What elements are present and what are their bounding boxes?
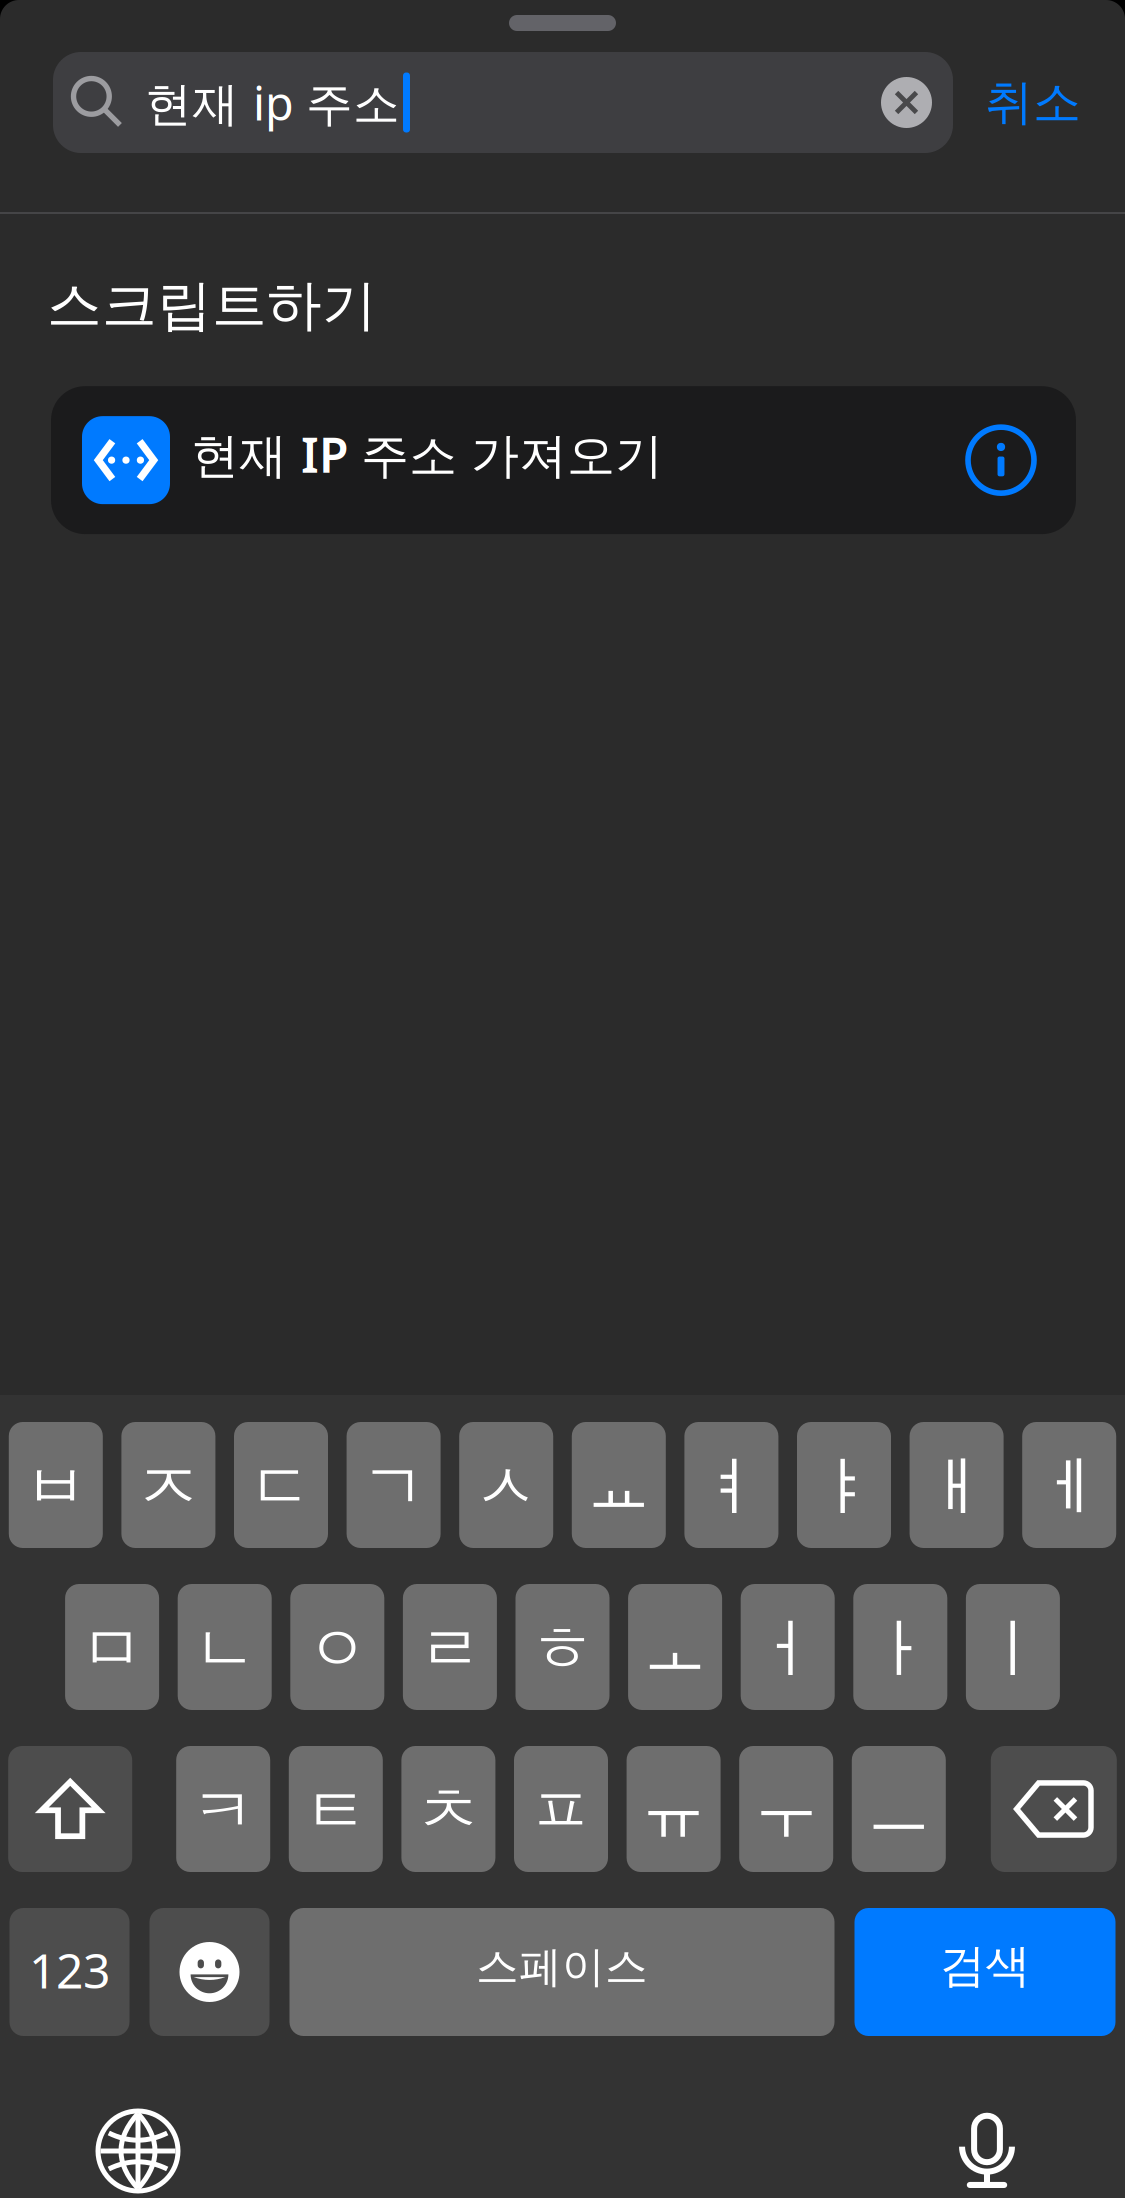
button[interactable]: Shift <box>8 1746 132 1872</box>
button[interactable]: ㄴ <box>178 1584 272 1710</box>
staticText: ㅁ <box>80 1610 144 1688</box>
staticText: ㅂ <box>24 1448 88 1526</box>
button[interactable]: ㄹ <box>403 1584 497 1710</box>
staticText: ㅣ <box>981 1610 1045 1688</box>
button[interactable]: ㅕ <box>684 1422 778 1548</box>
button[interactable]: ㅡ <box>852 1746 946 1872</box>
button[interactable]: ㅏ <box>853 1584 947 1710</box>
staticText: 현재 IP 주소 가져오기 <box>191 422 663 486</box>
button[interactable]: ㅐ <box>910 1422 1004 1548</box>
button[interactable]: ㅊ <box>401 1746 495 1872</box>
staticText: ㅊ <box>416 1772 480 1850</box>
staticText: 현재 ip 주소 <box>145 71 400 133</box>
staticText: ㅇ <box>305 1610 369 1688</box>
button[interactable]: Clear search text <box>881 77 932 128</box>
staticText: 검색 <box>940 1938 1030 1994</box>
button[interactable]: 현재 IP 주소 가져오기 <box>51 386 1076 534</box>
staticText: ㄹ <box>418 1610 482 1688</box>
button[interactable]: ㅑ <box>797 1422 891 1548</box>
button[interactable]: ㅌ <box>289 1746 383 1872</box>
staticText: ㅓ <box>756 1610 820 1688</box>
staticText: 취소 <box>985 73 1081 132</box>
button[interactable]: Dictation <box>944 2108 1030 2194</box>
staticText: 스크립트하기 <box>47 272 377 339</box>
staticText: ㅋ <box>191 1772 255 1850</box>
button[interactable]: Next keyboard <box>98 2111 178 2191</box>
staticText: ㅎ <box>530 1610 594 1688</box>
button[interactable]: 123 <box>9 1908 129 2036</box>
button[interactable]: ㅋ <box>176 1746 270 1872</box>
button[interactable]: Delete <box>991 1746 1117 1872</box>
button[interactable]: Emoji keyboard <box>149 1908 269 2036</box>
button[interactable]: ㅈ <box>121 1422 215 1548</box>
staticText: ㄴ <box>193 1610 257 1688</box>
staticText: ㅔ <box>1037 1448 1101 1526</box>
staticText: 스페이스 <box>476 1941 648 1993</box>
staticText: ㅍ <box>529 1772 593 1850</box>
button[interactable]: ㅔ <box>1022 1422 1116 1548</box>
staticText: ㅠ <box>642 1772 706 1850</box>
button[interactable]: ㄷ <box>234 1422 328 1548</box>
button[interactable]: 취소 <box>953 52 1113 153</box>
staticText: ㅈ <box>136 1448 200 1526</box>
button[interactable]: ㅓ <box>741 1584 835 1710</box>
button[interactable]: ㄱ <box>347 1422 441 1548</box>
staticText: ㅅ <box>474 1448 538 1526</box>
button[interactable]: ㅍ <box>514 1746 608 1872</box>
button[interactable]: ㅛ <box>572 1422 666 1548</box>
staticText: ㅌ <box>304 1772 368 1850</box>
staticText: ㅗ <box>643 1610 707 1688</box>
staticText: ㅜ <box>754 1772 818 1850</box>
staticText: ㅏ <box>868 1610 932 1688</box>
button[interactable]: ㅂ <box>9 1422 103 1548</box>
staticText: ㄱ <box>362 1448 426 1526</box>
button[interactable]: ㅇ <box>290 1584 384 1710</box>
button[interactable]: ㅜ <box>739 1746 833 1872</box>
staticText: ㅑ <box>812 1448 876 1526</box>
button[interactable]: ㅗ <box>628 1584 722 1710</box>
button[interactable]: ㅅ <box>459 1422 553 1548</box>
staticText: ㄷ <box>249 1448 313 1526</box>
staticText: ㅕ <box>699 1448 763 1526</box>
staticText: ㅡ <box>867 1772 931 1850</box>
staticText: ㅛ <box>587 1448 651 1526</box>
button[interactable]: ㅁ <box>65 1584 159 1710</box>
staticText: ㅐ <box>925 1448 989 1526</box>
button[interactable]: ㅎ <box>515 1584 609 1710</box>
button[interactable]: ㅠ <box>627 1746 721 1872</box>
staticText: 123 <box>29 1938 110 2002</box>
button[interactable]: 스페이스 <box>289 1908 834 2036</box>
button[interactable]: ㅣ <box>966 1584 1060 1710</box>
button[interactable]: 검색 <box>854 1908 1115 2036</box>
